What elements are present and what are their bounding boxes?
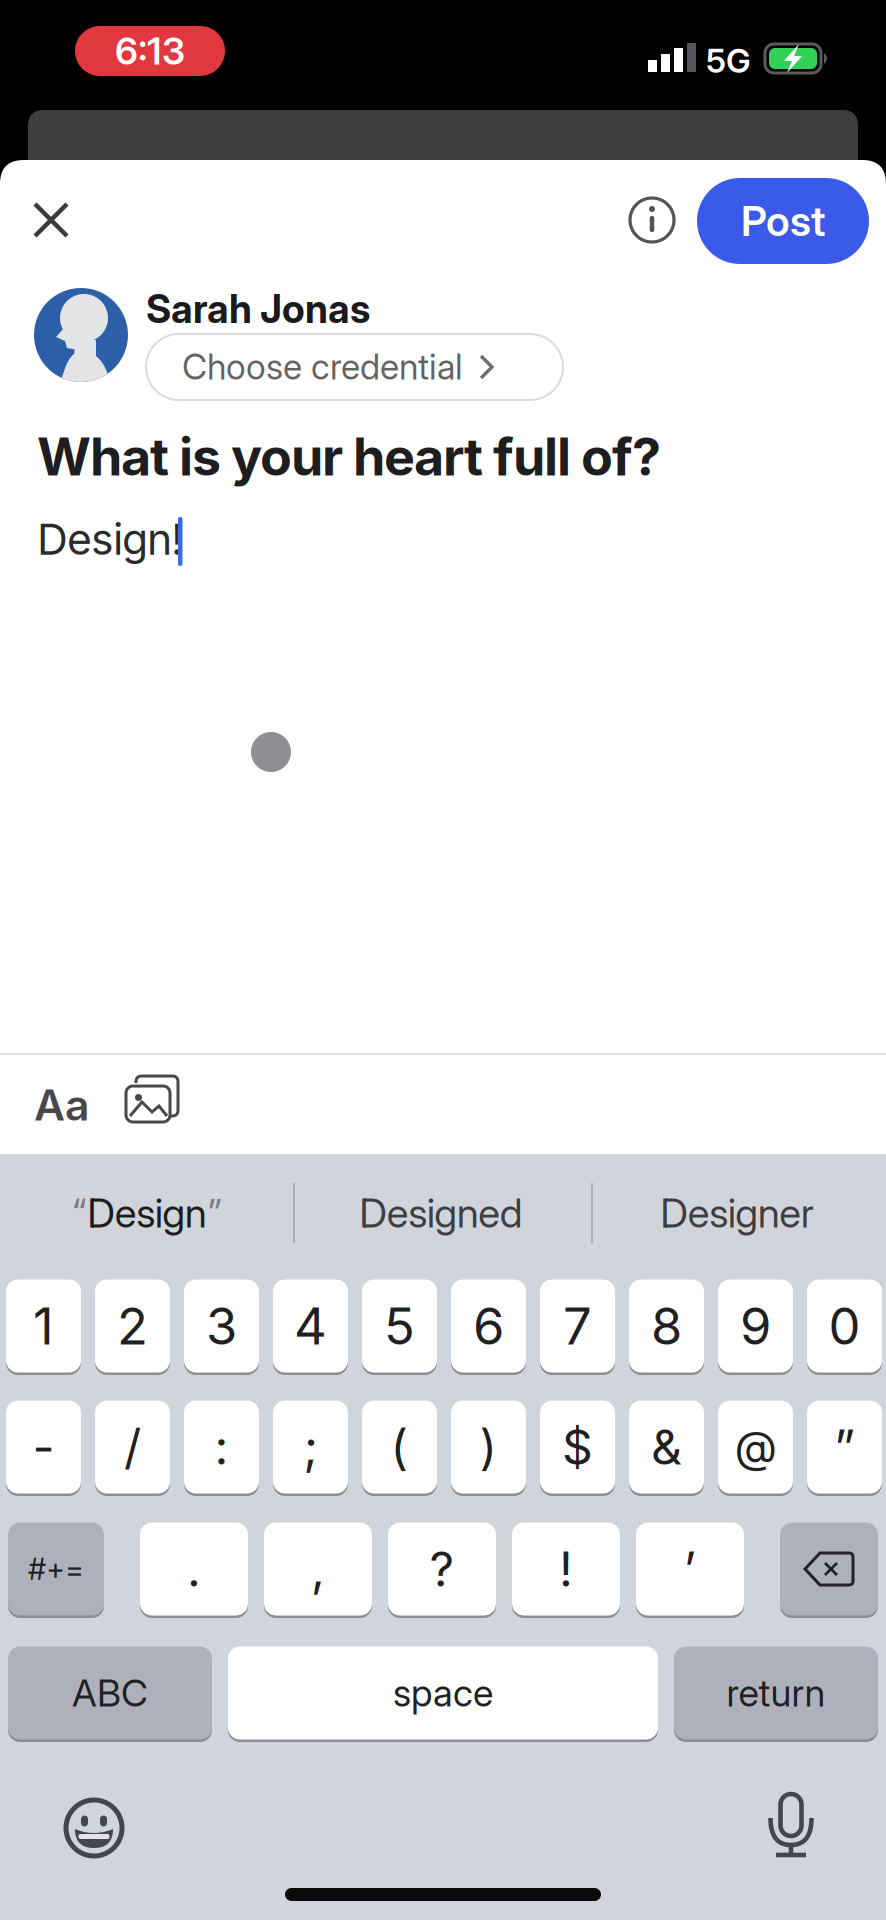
- button[interactable]: /: [95, 1399, 170, 1495]
- staticText: ABC: [72, 1671, 148, 1715]
- button[interactable]: (: [362, 1399, 437, 1495]
- staticText: ”: [208, 1189, 222, 1237]
- button[interactable]: &: [629, 1399, 704, 1495]
- staticText: space: [393, 1671, 493, 1715]
- staticText: #+=: [28, 1552, 84, 1586]
- button[interactable]: space: [228, 1645, 658, 1741]
- staticText: “: [72, 1189, 86, 1237]
- button[interactable]: 8: [629, 1278, 704, 1374]
- staticText: -: [32, 1419, 54, 1475]
- staticText: ’: [683, 1541, 696, 1597]
- staticText: 8: [651, 1296, 682, 1356]
- staticText: ”: [834, 1419, 855, 1475]
- staticText: 5G: [706, 41, 751, 80]
- staticText: Design!: [37, 514, 183, 564]
- button[interactable]: 5: [362, 1278, 437, 1374]
- button[interactable]: “: [2, 1163, 292, 1263]
- button[interactable]: Dictate: [768, 1793, 814, 1859]
- button[interactable]: -: [6, 1399, 81, 1495]
- button[interactable]: :: [184, 1399, 259, 1495]
- button[interactable]: Close: [31, 200, 71, 240]
- staticText: $: [562, 1419, 593, 1475]
- staticText: !: [559, 1541, 573, 1597]
- staticText: Post: [741, 197, 825, 245]
- staticText: Aa: [34, 1080, 90, 1130]
- button[interactable]: Add photo: [126, 1076, 180, 1130]
- button[interactable]: return: [674, 1645, 878, 1741]
- staticText: Sarah Jonas: [146, 286, 370, 332]
- button[interactable]: @: [718, 1399, 793, 1495]
- staticText: Choose credential: [182, 347, 463, 387]
- button[interactable]: Designer: [592, 1163, 882, 1263]
- staticText: @: [734, 1421, 776, 1473]
- button[interactable]: ): [451, 1399, 526, 1495]
- staticText: 7: [563, 1296, 592, 1356]
- staticText: Designed: [359, 1189, 523, 1237]
- button[interactable]: 4: [273, 1278, 348, 1374]
- staticText: return: [726, 1671, 825, 1715]
- button[interactable]: Post: [697, 178, 869, 264]
- staticText: :: [214, 1419, 228, 1475]
- button[interactable]: 2: [95, 1278, 170, 1374]
- staticText: Design: [87, 1189, 207, 1237]
- staticText: Designer: [660, 1189, 814, 1237]
- button[interactable]: .: [140, 1521, 248, 1617]
- button[interactable]: 1: [6, 1278, 81, 1374]
- staticText: (: [390, 1419, 408, 1475]
- button[interactable]: 6: [451, 1278, 526, 1374]
- staticText: &: [651, 1419, 682, 1475]
- button[interactable]: Choose credential: [146, 334, 563, 400]
- staticText: 2: [117, 1296, 148, 1356]
- button[interactable]: ’: [636, 1521, 744, 1617]
- staticText: 1: [33, 1296, 54, 1356]
- button[interactable]: 9: [718, 1278, 793, 1374]
- button[interactable]: ”: [807, 1399, 882, 1495]
- staticText: 9: [740, 1296, 771, 1356]
- button[interactable]: Designed: [296, 1163, 586, 1263]
- staticText: 6: [473, 1296, 504, 1356]
- staticText: /: [124, 1419, 141, 1475]
- button[interactable]: ;: [273, 1399, 348, 1495]
- staticText: ;: [303, 1419, 317, 1475]
- button[interactable]: !: [512, 1521, 620, 1617]
- button[interactable]: ABC: [8, 1645, 212, 1741]
- staticText: .: [187, 1541, 201, 1597]
- button[interactable]: Emoji: [63, 1797, 125, 1859]
- button[interactable]: 7: [540, 1278, 615, 1374]
- staticText: ?: [429, 1541, 454, 1597]
- button[interactable]: Recording indicator 6:13: [75, 26, 225, 76]
- button[interactable]: ,: [264, 1521, 372, 1617]
- button[interactable]: $: [540, 1399, 615, 1495]
- staticText: 4: [294, 1296, 327, 1356]
- button[interactable]: Info: [630, 198, 674, 242]
- button[interactable]: Text style: [30, 1077, 94, 1133]
- button[interactable]: Delete: [780, 1521, 878, 1617]
- button[interactable]: ?: [388, 1521, 496, 1617]
- button[interactable]: 3: [184, 1278, 259, 1374]
- button[interactable]: #+=: [8, 1521, 104, 1617]
- staticText: What is your heart full of?: [37, 426, 661, 487]
- staticText: 0: [828, 1296, 860, 1356]
- staticText: 5: [384, 1296, 415, 1356]
- staticText: ): [479, 1419, 497, 1475]
- staticText: 6:13: [115, 29, 185, 73]
- staticText: ,: [311, 1541, 325, 1597]
- staticText: 3: [206, 1296, 237, 1356]
- button[interactable]: 0: [807, 1278, 882, 1374]
